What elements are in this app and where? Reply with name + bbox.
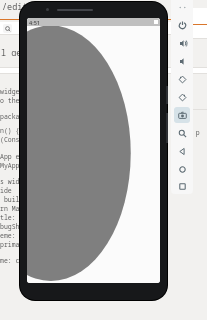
- staticText: App e: [0, 152, 20, 161]
- staticText: (Cons: [0, 135, 20, 144]
- button[interactable]: Volume up: [174, 35, 190, 51]
- button[interactable]: Home: [174, 161, 190, 177]
- button[interactable]: More options: [174, 0, 190, 15]
- staticText: n() {: [0, 126, 20, 135]
- staticText: packa: [0, 112, 20, 121]
- staticText: d p: [188, 128, 200, 137]
- staticText: prima: [0, 240, 20, 249]
- staticText: s wid: [0, 177, 20, 186]
- button[interactable]: Overview: [174, 179, 190, 193]
- button[interactable]: Back: [174, 143, 190, 159]
- staticText: me: con: [0, 256, 28, 265]
- staticText: eme:: [0, 231, 16, 240]
- staticText: buil: [0, 195, 20, 204]
- staticText: 4:51: [29, 19, 40, 26]
- staticText: bugSh: [0, 222, 20, 231]
- staticText: l get: [1, 47, 27, 56]
- button[interactable]: Rotate right: [174, 89, 190, 105]
- staticText: o the: [0, 96, 20, 105]
- button[interactable]: [0, 22, 207, 34]
- button[interactable]: Take screenshot: [174, 107, 190, 123]
- button[interactable]: Zoom: [174, 125, 190, 141]
- button[interactable]: Power: [174, 17, 190, 33]
- button[interactable]: Rotate left: [174, 71, 190, 87]
- staticText: tle:: [0, 213, 16, 222]
- button[interactable]: Volume down: [174, 53, 190, 69]
- staticText: widge: [0, 87, 20, 96]
- staticText: MyApp: [0, 161, 20, 170]
- staticText: rn Ma: [0, 204, 20, 213]
- staticText: ide: [0, 186, 12, 195]
- staticText: /edit: [2, 1, 28, 10]
